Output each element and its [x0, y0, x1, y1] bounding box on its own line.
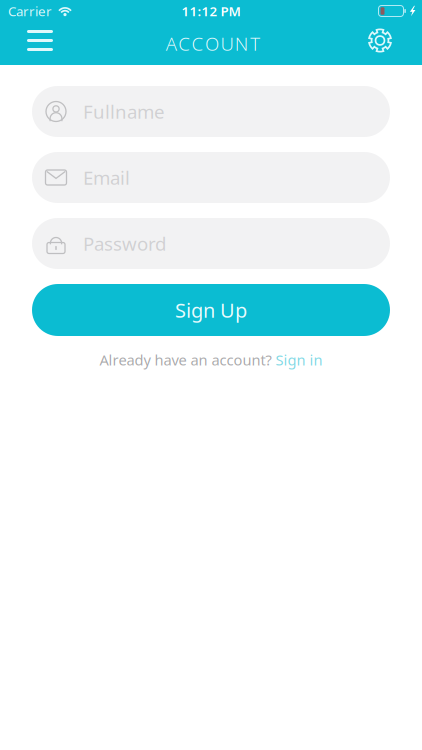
- staticText: Email: [83, 165, 130, 190]
- staticText: Sign Up: [175, 297, 247, 323]
- staticText: C: [192, 31, 204, 56]
- staticText: 11:12 PM: [181, 2, 240, 20]
- staticText: Already have an account?: [99, 350, 275, 369]
- staticText: Fullname: [83, 99, 165, 124]
- staticText: Sign in: [275, 350, 322, 369]
- button[interactable]: Settings: [354, 22, 422, 64]
- staticText: Carrier: [8, 2, 52, 20]
- staticText: Password: [83, 231, 166, 256]
- staticText: T: [250, 31, 260, 56]
- staticText: A: [166, 31, 177, 56]
- button[interactable]: Menu: [0, 24, 67, 63]
- staticText: N: [235, 31, 249, 56]
- button[interactable]: Sign Up: [32, 284, 390, 336]
- button[interactable]: Already have an account?: [99, 351, 322, 374]
- staticText: O: [205, 31, 219, 56]
- staticText: C: [178, 31, 190, 56]
- staticText: U: [220, 31, 233, 56]
